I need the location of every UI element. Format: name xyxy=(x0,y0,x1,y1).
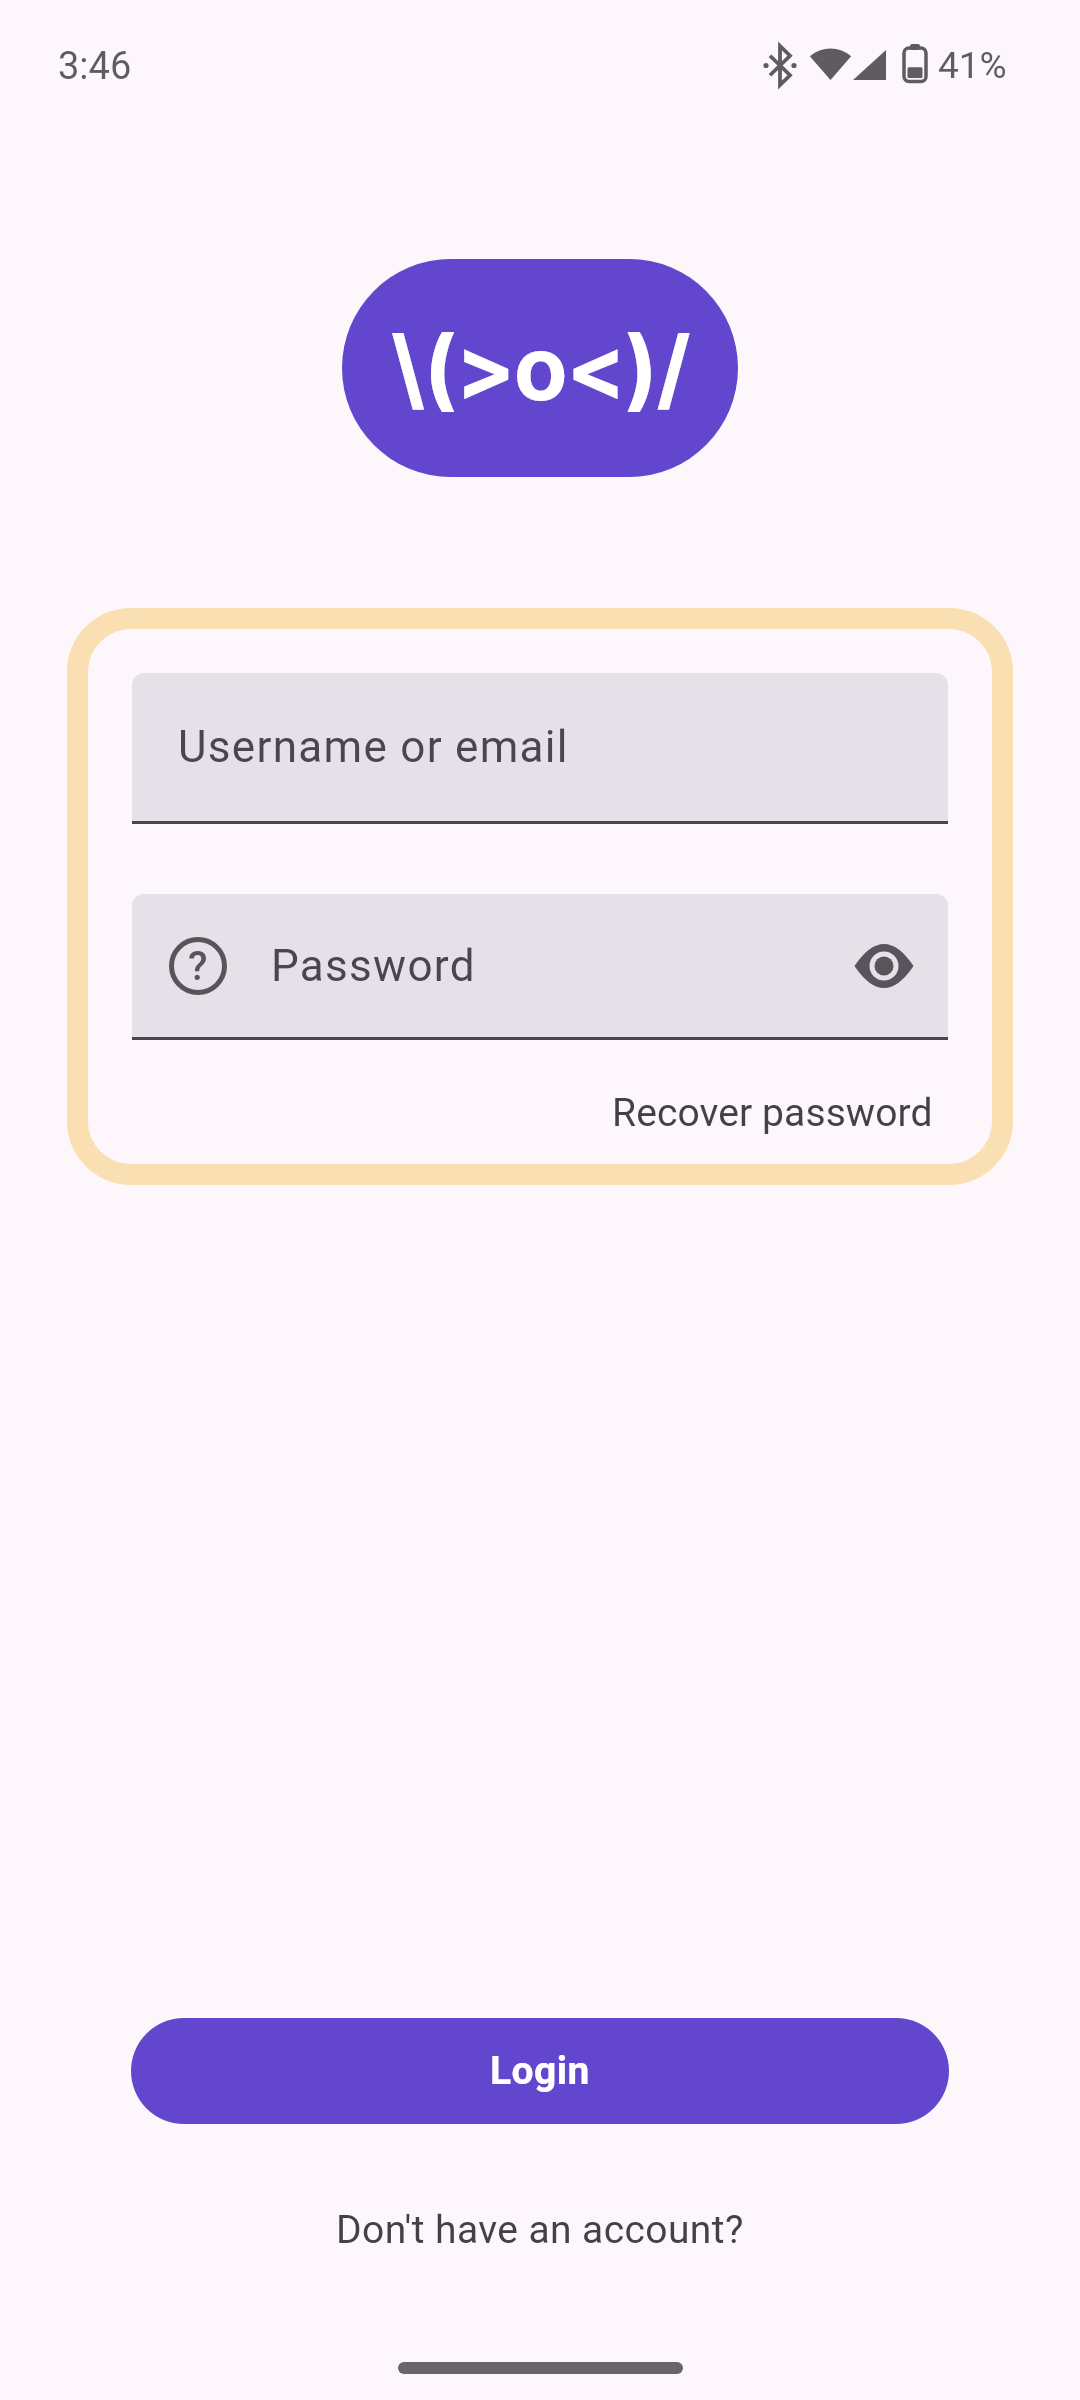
staticText: 41% xyxy=(938,44,1007,87)
staticText: Login xyxy=(490,2048,590,2094)
button[interactable]: Don't have an account? xyxy=(336,2207,744,2253)
staticText: Don't have an account? xyxy=(336,2207,744,2253)
staticText: 3:46 xyxy=(58,44,132,89)
staticText: Recover password xyxy=(612,1090,933,1136)
staticText: \(>o<)/ xyxy=(391,315,690,421)
staticText: Password xyxy=(271,940,476,992)
button[interactable] xyxy=(853,942,915,990)
button[interactable]: Recover password xyxy=(612,1090,933,1136)
button[interactable]: Username or email xyxy=(132,673,948,824)
button[interactable]: Login xyxy=(131,2018,949,2124)
staticText: Username or email xyxy=(178,721,569,773)
button[interactable]: ? xyxy=(132,894,948,1040)
staticText: ? xyxy=(188,943,208,990)
